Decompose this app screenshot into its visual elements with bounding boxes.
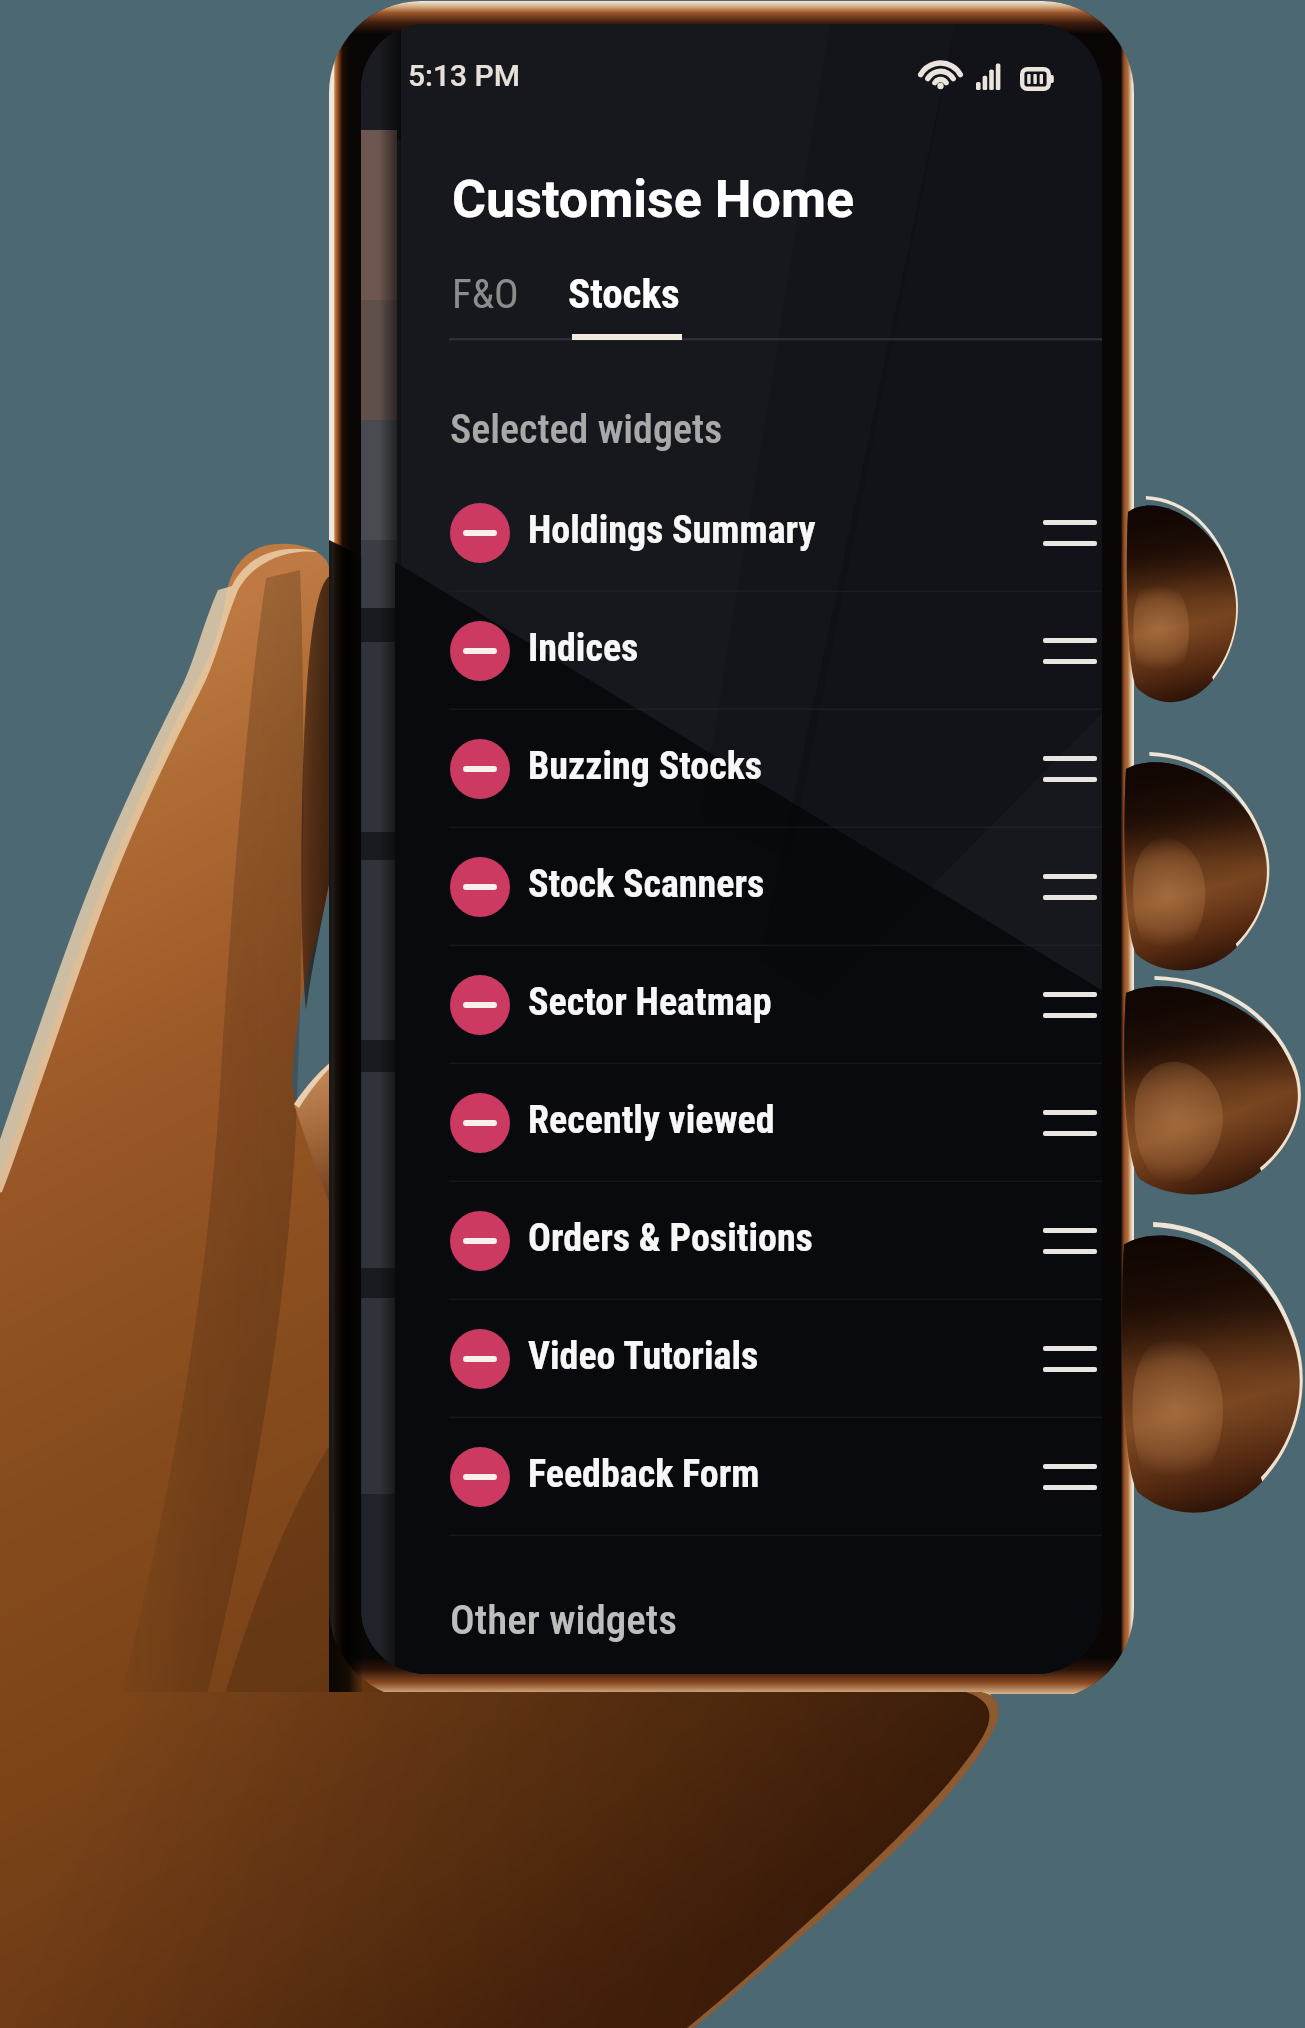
button[interactable]: Remove Orders & Positions [450, 1211, 510, 1271]
button[interactable]: F&O [444, 256, 544, 338]
button[interactable]: Reorder Stock Scanners [1027, 854, 1102, 920]
button[interactable]: Reorder Sector Heatmap [1027, 972, 1102, 1038]
button[interactable]: Remove Recently viewed [450, 1093, 510, 1153]
button[interactable]: Remove Stock Scanners [450, 857, 510, 917]
button[interactable]: Reorder Recently viewed [1027, 1090, 1102, 1156]
button[interactable]: Reorder Orders & Positions [1027, 1208, 1102, 1274]
button[interactable]: Remove Holdings Summary [401, 474, 1102, 592]
button[interactable]: Remove Stock Scanners [401, 828, 1102, 946]
button[interactable]: Remove Buzzing Stocks [450, 739, 510, 799]
button[interactable]: Reorder Holdings Summary [1027, 500, 1102, 566]
staticText: F&O [452, 270, 519, 318]
button[interactable]: Remove Holdings Summary [450, 503, 510, 563]
button[interactable]: Remove Sector Heatmap [401, 946, 1102, 1064]
staticText: 5:13 PM [408, 58, 521, 93]
button[interactable]: Reorder Indices [1027, 618, 1102, 684]
staticText: Stock Scanners [528, 862, 765, 907]
staticText: Video Tutorials [528, 1334, 759, 1379]
button[interactable]: Remove Video Tutorials [450, 1329, 510, 1389]
staticText: Holdings Summary [528, 508, 816, 553]
button[interactable]: Remove Orders & Positions [401, 1182, 1102, 1300]
button[interactable]: Stocks [558, 256, 698, 338]
button[interactable]: Remove Video Tutorials [401, 1300, 1102, 1418]
button[interactable]: Remove Buzzing Stocks [401, 710, 1102, 828]
button[interactable]: Reorder Feedback Form [1027, 1444, 1102, 1510]
staticText: Customise Home [452, 169, 855, 230]
button[interactable]: Reorder Buzzing Stocks [1027, 736, 1102, 802]
staticText: Orders & Positions [528, 1216, 813, 1261]
staticText: Other widgets [450, 1596, 677, 1644]
staticText: Sector Heatmap [528, 980, 772, 1025]
button[interactable]: Remove Feedback Form [401, 1418, 1102, 1536]
button[interactable]: Remove Sector Heatmap [450, 975, 510, 1035]
button[interactable]: Remove Feedback Form [450, 1447, 510, 1507]
button[interactable]: Reorder Video Tutorials [1027, 1326, 1102, 1392]
staticText: Selected widgets [450, 406, 723, 453]
button[interactable]: Remove Recently viewed [401, 1064, 1102, 1182]
staticText: Feedback Form [528, 1452, 760, 1497]
button[interactable]: Remove Indices [450, 621, 510, 681]
staticText: Stocks [568, 270, 680, 318]
button[interactable]: Remove Indices [401, 592, 1102, 710]
staticText: Buzzing Stocks [528, 744, 763, 789]
staticText: Indices [528, 626, 639, 671]
staticText: Recently viewed [528, 1098, 775, 1143]
